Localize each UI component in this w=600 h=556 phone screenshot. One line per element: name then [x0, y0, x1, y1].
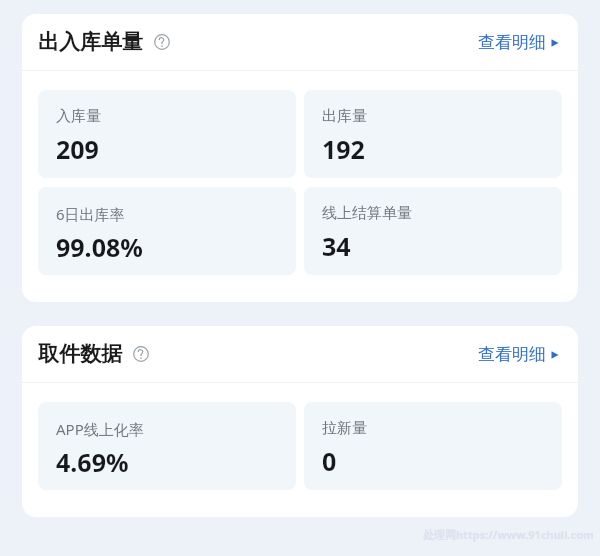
- button[interactable]: 帮助说明: [150, 30, 174, 54]
- button[interactable]: APP线上化率: [38, 402, 296, 490]
- staticText: 209: [56, 132, 99, 166]
- staticText: 34: [322, 229, 351, 263]
- staticText: 4.69%: [56, 445, 129, 479]
- staticText: 处理网https://www.91chuli.com: [423, 527, 594, 542]
- button[interactable]: 查看明细: [476, 340, 562, 369]
- button[interactable]: 出库量: [304, 90, 562, 178]
- staticText: 6日出库率: [56, 204, 125, 224]
- staticText: 查看明细: [478, 32, 546, 53]
- button[interactable]: 入库量: [38, 90, 296, 178]
- button[interactable]: 帮助说明: [129, 342, 153, 366]
- staticText: 取件数据: [38, 341, 122, 367]
- staticText: 查看明细: [478, 344, 546, 365]
- staticText: 99.08%: [56, 230, 143, 264]
- staticText: 入库量: [56, 107, 101, 126]
- staticText: 出库量: [322, 107, 367, 126]
- staticText: 0: [322, 444, 337, 478]
- button[interactable]: 拉新量: [304, 402, 562, 490]
- button[interactable]: 6日出库率: [38, 187, 296, 275]
- staticText: 线上结算单量: [322, 204, 412, 223]
- button[interactable]: 线上结算单量: [304, 187, 562, 275]
- staticText: 出入库单量: [38, 29, 143, 55]
- staticText: 拉新量: [322, 419, 367, 438]
- button[interactable]: 查看明细: [476, 28, 562, 57]
- staticText: 192: [322, 132, 365, 166]
- staticText: APP线上化率: [56, 419, 144, 439]
